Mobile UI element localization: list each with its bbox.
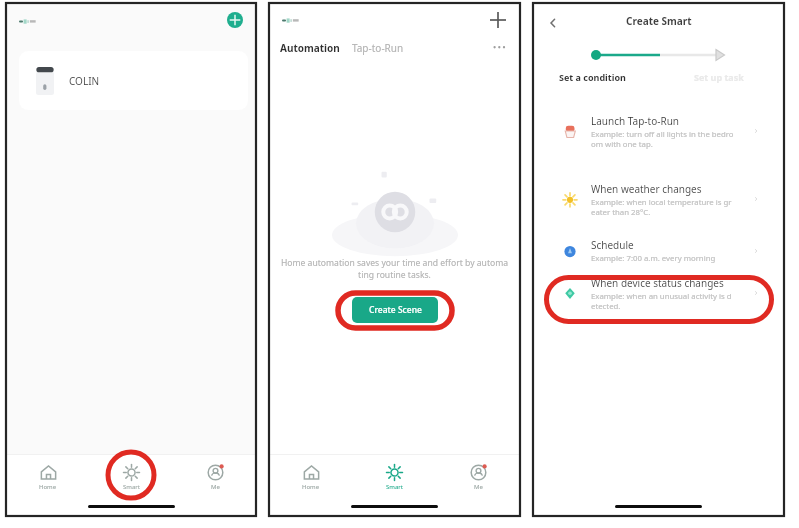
staticText: Set a condition: [559, 71, 626, 83]
button[interactable]: Me: [188, 458, 242, 496]
staticText: Schedule: [591, 238, 634, 252]
staticText: Example: 7:00 a.m. every morning: [591, 253, 716, 264]
button[interactable]: Automation: [280, 41, 340, 55]
staticText: When device status changes: [591, 276, 724, 290]
staticText: Create Smart: [626, 14, 692, 28]
staticText: Home: [39, 483, 57, 491]
staticText: When weather changes: [591, 182, 702, 196]
staticText: Example: when local temperature is gr ea…: [591, 197, 732, 217]
staticText: Smart: [123, 483, 140, 491]
button[interactable]: Home: [284, 458, 338, 496]
staticText: Home: [302, 483, 320, 491]
staticText: Smart: [386, 483, 403, 491]
button[interactable]: Back: [543, 13, 563, 33]
staticText: Launch Tap-to-Run: [591, 114, 679, 128]
button[interactable]: Me: [451, 458, 505, 496]
staticText: Me: [211, 483, 220, 491]
button[interactable]: Smart: [104, 458, 158, 496]
button[interactable]: Tap-to-Run: [352, 41, 404, 55]
button[interactable]: Smart: [367, 458, 421, 496]
button[interactable]: COLIN: [19, 51, 248, 110]
staticText: Example: when an unusual activity is d e…: [591, 291, 732, 311]
staticText: Set up task: [694, 71, 744, 83]
staticText: COLIN: [69, 74, 100, 88]
button[interactable]: When weather changes: [533, 177, 784, 221]
staticText: Create Scene: [369, 304, 422, 316]
button[interactable]: Schedule: [533, 229, 784, 273]
staticText: Home automation saves your time and effo…: [277, 257, 512, 280]
button[interactable]: Launch Tap-to-Run: [533, 109, 784, 153]
button[interactable]: Add: [488, 10, 508, 30]
staticText: Me: [474, 483, 483, 491]
button[interactable]: More options: [486, 41, 506, 53]
button[interactable]: Create Scene: [352, 297, 438, 323]
staticText: Example: turn off all lights in the bedr…: [591, 129, 734, 149]
button[interactable]: When device status changes: [533, 271, 784, 315]
button[interactable]: Add device: [227, 12, 243, 28]
button[interactable]: Home: [21, 458, 75, 496]
